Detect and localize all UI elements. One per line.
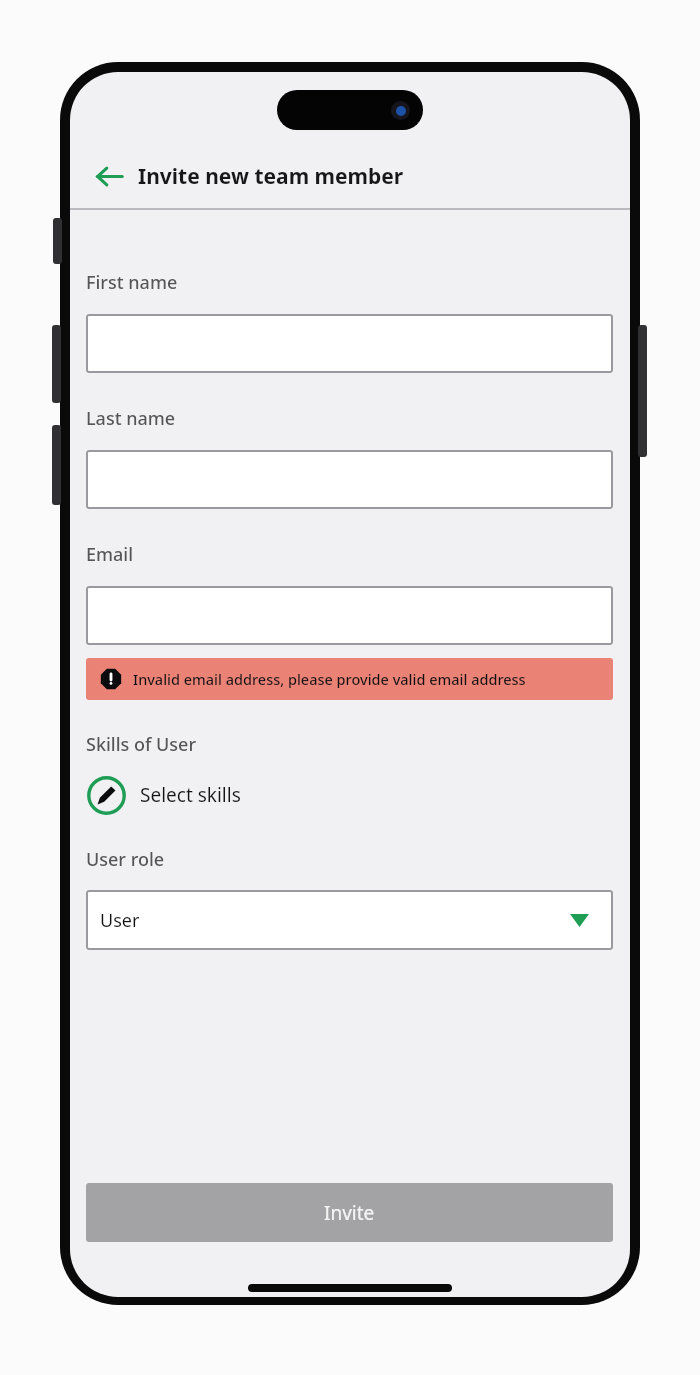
staticText: Invalid email address, please provide va… xyxy=(133,669,526,689)
staticText: First name xyxy=(86,270,178,295)
button[interactable]: Invite xyxy=(86,1183,613,1242)
button[interactable] xyxy=(86,450,613,509)
staticText: User xyxy=(100,908,140,933)
staticText: Invite xyxy=(324,1200,375,1226)
other: Back xyxy=(86,153,132,199)
staticText: Invite new team member xyxy=(138,162,404,191)
button[interactable]: User xyxy=(86,890,613,950)
staticText: Email xyxy=(86,542,134,567)
button[interactable]: Select skills xyxy=(82,770,241,820)
staticText: Skills of User xyxy=(86,732,197,757)
staticText: Last name xyxy=(86,406,176,431)
button[interactable] xyxy=(86,586,613,645)
button[interactable] xyxy=(86,314,613,373)
staticText: User role xyxy=(86,847,165,872)
button[interactable]: Back xyxy=(86,152,404,200)
staticText: Select skills xyxy=(140,782,241,808)
